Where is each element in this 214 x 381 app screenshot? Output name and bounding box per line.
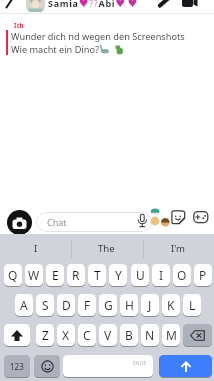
button[interactable]: W xyxy=(25,264,43,286)
button[interactable]: F xyxy=(78,294,96,316)
staticText: N xyxy=(145,327,155,343)
button[interactable]: Q xyxy=(4,264,22,286)
button[interactable]: 123 xyxy=(4,355,30,377)
button[interactable]: The xyxy=(71,236,142,261)
button[interactable]: S xyxy=(36,294,54,316)
button[interactable]: I xyxy=(152,264,170,286)
button[interactable]: G xyxy=(99,294,117,316)
staticText: A xyxy=(20,297,28,313)
staticText: Q xyxy=(8,267,18,283)
staticText: F xyxy=(84,297,91,313)
button[interactable] xyxy=(7,210,32,235)
button[interactable]: M xyxy=(162,324,180,346)
button[interactable]: K xyxy=(162,294,180,316)
staticText: E xyxy=(52,267,59,283)
staticText: L xyxy=(189,297,196,313)
staticText: V xyxy=(104,327,112,343)
staticText: U xyxy=(136,267,145,283)
staticText: Z xyxy=(42,327,49,343)
staticText: S xyxy=(42,297,49,313)
button[interactable] xyxy=(63,355,153,377)
button[interactable]: J xyxy=(141,294,159,316)
staticText: C xyxy=(83,327,91,343)
button[interactable] xyxy=(4,0,16,11)
staticText: Wunder dich nd wegen den Screenshots xyxy=(11,30,185,43)
button[interactable]: Y xyxy=(109,264,127,286)
staticText: G xyxy=(104,297,113,313)
button[interactable] xyxy=(157,0,171,9)
button[interactable]: L xyxy=(183,294,201,316)
staticText: H xyxy=(125,297,134,313)
staticText: 123 xyxy=(10,361,24,372)
button[interactable]: D xyxy=(57,294,75,316)
staticText: P xyxy=(199,267,207,283)
button[interactable]: Z xyxy=(36,324,54,346)
staticText: Chat xyxy=(47,216,67,228)
staticText: T xyxy=(94,267,101,283)
staticText: K xyxy=(167,297,175,313)
staticText: I'm xyxy=(171,242,185,255)
button[interactable]: I'm xyxy=(142,236,214,261)
staticText: O xyxy=(177,267,187,283)
button[interactable] xyxy=(26,0,45,12)
button[interactable]: U xyxy=(131,264,149,286)
staticText: J xyxy=(148,297,152,313)
button[interactable]: R xyxy=(67,264,85,286)
staticText: R xyxy=(72,267,80,283)
button[interactable]: I xyxy=(0,236,71,261)
button[interactable]: A xyxy=(15,294,33,316)
button[interactable]: X xyxy=(57,324,75,346)
button[interactable]: V xyxy=(99,324,117,346)
button[interactable] xyxy=(159,355,212,377)
button[interactable]: B xyxy=(120,324,138,346)
button[interactable]: P xyxy=(194,264,212,286)
staticText: Y xyxy=(115,267,122,283)
button[interactable] xyxy=(183,324,212,346)
button[interactable]: Chat xyxy=(36,212,152,232)
staticText: M xyxy=(166,327,177,343)
button[interactable] xyxy=(34,355,60,377)
staticText: W xyxy=(28,267,40,283)
button[interactable]: O xyxy=(173,264,191,286)
button[interactable]: T xyxy=(88,264,106,286)
button[interactable] xyxy=(4,324,30,346)
button[interactable]: H xyxy=(120,294,138,316)
staticText: X xyxy=(62,327,70,343)
staticText: I xyxy=(159,267,164,283)
staticText: I xyxy=(34,242,38,255)
staticText: Samia♥??Abi♥♥ xyxy=(48,0,140,10)
staticText: Ich xyxy=(14,21,24,29)
button[interactable] xyxy=(171,210,186,225)
button[interactable] xyxy=(182,0,199,8)
button[interactable] xyxy=(149,206,172,229)
button[interactable] xyxy=(136,213,149,230)
button[interactable] xyxy=(193,210,209,224)
staticText: EN DE xyxy=(133,360,146,366)
staticText: B xyxy=(125,327,133,343)
button[interactable]: C xyxy=(78,324,96,346)
staticText: D xyxy=(62,297,71,313)
button[interactable]: E xyxy=(46,264,64,286)
staticText: The xyxy=(98,242,115,255)
button[interactable]: N xyxy=(141,324,159,346)
staticText: Wie macht ein Dino? xyxy=(11,43,99,56)
